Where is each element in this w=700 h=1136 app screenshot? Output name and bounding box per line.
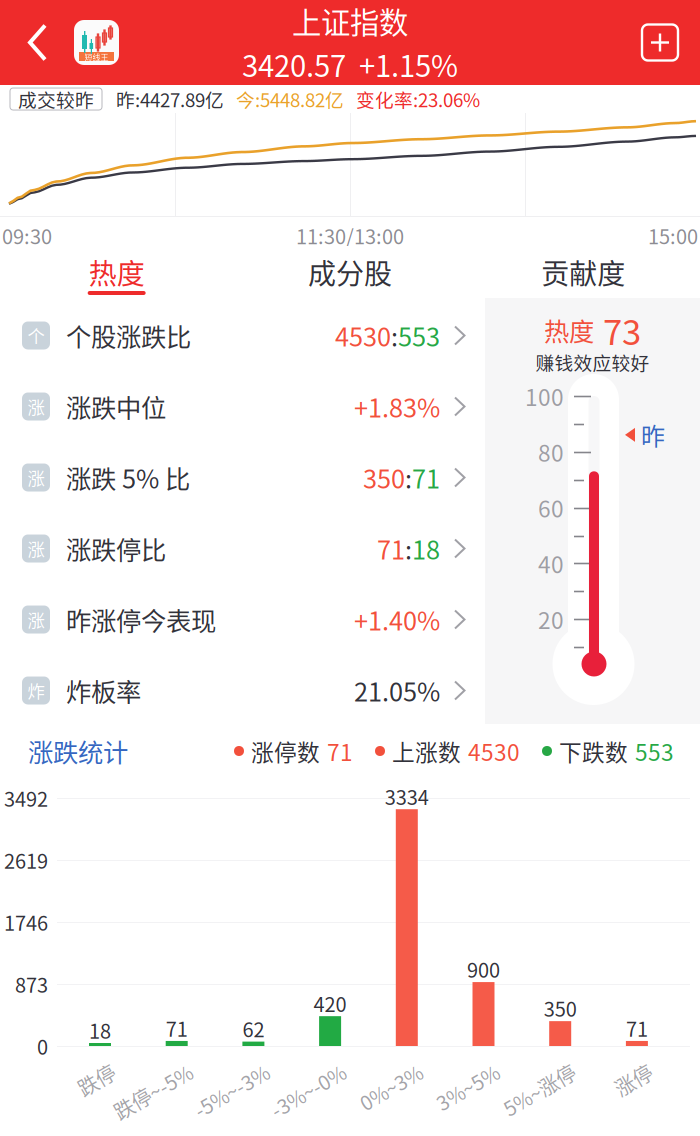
staticText: 71 — [166, 1013, 188, 1042]
staticText: 涨停 — [611, 1055, 651, 1084]
staticText: 60 — [538, 491, 564, 524]
button[interactable]: 个 — [0, 300, 485, 371]
staticText: 热度 — [89, 252, 145, 292]
staticText: 昨:4427.89亿 — [116, 85, 224, 112]
staticText: 成交较昨 — [18, 85, 94, 112]
staticText: : — [405, 530, 412, 567]
staticText: 热度 — [544, 312, 594, 348]
staticText: 炸板率 — [66, 672, 141, 709]
staticText: : — [405, 459, 412, 496]
staticText: 18 — [412, 530, 440, 567]
staticText: 350 — [544, 994, 577, 1023]
staticText: 2619 — [4, 845, 48, 874]
staticText: 3334 — [385, 782, 429, 811]
staticText: 个 — [27, 323, 44, 348]
staticText: 0 — [37, 1031, 48, 1060]
staticText: : — [391, 317, 398, 354]
staticText: 个股涨跌比 — [66, 317, 191, 354]
staticText: 15:00 — [648, 221, 698, 250]
staticText: 成分股 — [308, 252, 392, 292]
staticText: 80 — [538, 435, 564, 468]
staticText: 20 — [538, 603, 564, 636]
button[interactable]: 炸 — [0, 655, 485, 726]
button[interactable]: 热度 — [0, 246, 233, 300]
staticText: 下跌数 — [559, 735, 628, 767]
staticText: 3%~5% — [428, 1055, 497, 1084]
staticText: 1746 — [4, 907, 48, 936]
button[interactable]: 涨 — [0, 371, 485, 442]
button[interactable]: 添加自选 — [620, 0, 700, 85]
staticText: 71 — [626, 1013, 648, 1042]
staticText: 今:5448.82亿 — [236, 85, 344, 112]
staticText: 涨跌停比 — [66, 530, 166, 567]
staticText: 100 — [525, 380, 564, 412]
button[interactable]: 成分股 — [233, 246, 467, 300]
staticText: 上涨数 — [392, 735, 461, 767]
staticText: 涨跌 5% 比 — [66, 459, 190, 496]
button[interactable]: 返回 — [0, 0, 74, 85]
staticText: 18 — [89, 1015, 111, 1044]
staticText: +1.15% — [359, 43, 458, 85]
staticText: 873 — [15, 969, 48, 998]
staticText: 553 — [398, 317, 440, 354]
staticText: -5%~-3% — [184, 1055, 267, 1084]
staticText: -3%~-0% — [261, 1055, 344, 1084]
staticText: 420 — [314, 989, 347, 1018]
staticText: 跌停 — [74, 1055, 114, 1084]
button[interactable]: 涨 — [0, 513, 485, 584]
staticText: 变化率:23.06% — [356, 85, 480, 112]
staticText: 贡献度 — [541, 252, 625, 292]
staticText: +1.83% — [354, 388, 440, 425]
staticText: 涨 — [27, 465, 44, 490]
staticText: 0%~3% — [352, 1055, 421, 1084]
staticText: 71 — [412, 459, 440, 496]
staticText: 跌停~-5% — [104, 1055, 191, 1084]
staticText: +1.40% — [354, 601, 440, 638]
staticText: 涨 — [27, 607, 44, 632]
staticText: 71 — [377, 530, 405, 567]
staticText: 昨涨停今表现 — [66, 601, 216, 638]
staticText: 涨跌中位 — [66, 388, 166, 425]
staticText: 350 — [363, 459, 405, 496]
staticText: 涨停数 — [251, 735, 320, 767]
staticText: 09:30 — [2, 221, 52, 250]
staticText: 短线王 — [84, 51, 108, 63]
staticText: 5%~涨停 — [494, 1055, 574, 1084]
staticText: 900 — [467, 955, 500, 984]
button[interactable]: 贡献度 — [467, 246, 700, 300]
staticText: 4530 — [468, 735, 520, 767]
button[interactable]: 涨 — [0, 442, 485, 513]
staticText: 涨跌统计 — [28, 733, 128, 769]
staticText: 炸 — [27, 678, 44, 703]
button[interactable]: 涨 — [0, 584, 485, 655]
staticText: 4530 — [335, 317, 391, 354]
staticText: 上证指数 — [292, 0, 408, 42]
staticText: 21.05% — [354, 672, 440, 709]
staticText: 73 — [603, 305, 641, 355]
staticText: 涨 — [27, 394, 44, 419]
staticText: 40 — [538, 547, 564, 580]
staticText: 11:30/13:00 — [296, 221, 404, 250]
staticText: 3492 — [4, 783, 48, 812]
staticText: 3420.57 — [242, 43, 346, 85]
staticText: 62 — [242, 1014, 264, 1043]
staticText: 昨 — [641, 417, 665, 452]
staticText: 涨 — [27, 536, 44, 561]
staticText: 赚钱效应较好 — [535, 348, 649, 375]
staticText: 71 — [327, 735, 353, 767]
staticText: 553 — [635, 735, 674, 767]
